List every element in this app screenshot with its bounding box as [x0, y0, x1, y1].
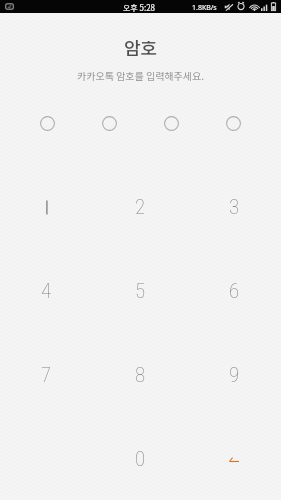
staticText: 8	[135, 363, 146, 388]
staticText: 6	[229, 279, 240, 304]
button[interactable]: 3	[187, 165, 281, 249]
staticText: 0	[135, 447, 146, 472]
staticText: 5	[135, 279, 146, 304]
staticText: 2	[135, 195, 146, 220]
button[interactable]: 7	[0, 333, 93, 417]
staticText: 4	[41, 279, 52, 304]
staticText: 암호	[0, 34, 281, 60]
other: Backspace	[217, 442, 251, 476]
button[interactable]: 6	[187, 249, 281, 333]
staticText: 3	[229, 195, 240, 220]
button[interactable]: 9	[187, 333, 281, 417]
button[interactable]: 5	[93, 249, 187, 333]
button[interactable]	[0, 165, 93, 249]
staticText: 카카오톡 암호를 입력해주세요.	[0, 68, 281, 82]
button[interactable]: Backspace	[187, 417, 281, 500]
button[interactable]: 4	[0, 249, 93, 333]
staticText: 오후 5:28	[123, 2, 156, 14]
button[interactable]: 0	[93, 417, 187, 500]
staticText: 9	[229, 363, 240, 388]
staticText: 7	[41, 363, 52, 388]
button[interactable]: 8	[93, 333, 187, 417]
button[interactable]: 2	[93, 165, 187, 249]
staticText: 1.8KB/s	[192, 3, 217, 13]
